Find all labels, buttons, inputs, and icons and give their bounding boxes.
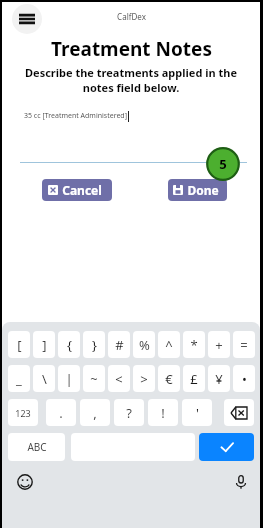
staticText: | xyxy=(65,370,73,388)
button[interactable]: \ xyxy=(33,365,55,392)
staticText: • xyxy=(242,370,247,388)
staticText: ' xyxy=(196,404,199,422)
staticText: < xyxy=(115,370,123,388)
button[interactable]: Menu xyxy=(12,4,42,34)
staticText: Treatment Notes xyxy=(51,36,212,62)
button[interactable]: % xyxy=(133,331,155,358)
staticText: 5 xyxy=(219,155,227,173)
staticText: } xyxy=(92,336,97,354)
staticText: Describe the treatments applied in the n… xyxy=(10,65,252,95)
staticText: # xyxy=(115,336,124,354)
button[interactable]: | xyxy=(58,365,80,392)
button[interactable]: { xyxy=(58,331,80,358)
button[interactable]: 35 cc [Treatment Administered] xyxy=(24,108,129,124)
button[interactable]: . xyxy=(46,399,76,426)
button[interactable]: ] xyxy=(33,331,55,358)
staticText: Done xyxy=(187,182,219,198)
staticText: ~ xyxy=(90,370,98,388)
button[interactable]: [ xyxy=(8,331,30,358)
button[interactable]: } xyxy=(83,331,105,358)
button[interactable]: Done xyxy=(168,179,227,201)
staticText: [ xyxy=(17,336,22,354)
button[interactable]: £ xyxy=(183,365,205,392)
staticText: € xyxy=(165,370,173,388)
button[interactable]: + xyxy=(208,331,230,358)
staticText: £ xyxy=(190,370,198,388)
button[interactable]: 123 xyxy=(8,399,38,426)
staticText: CalfDex xyxy=(117,11,146,22)
button[interactable]: ! xyxy=(148,399,178,426)
button[interactable]: Delete xyxy=(224,399,254,426)
button[interactable]: # xyxy=(108,331,130,358)
staticText: ABC xyxy=(27,440,47,454)
staticText: \ xyxy=(42,370,47,388)
staticText: 35 cc [Treatment Administered] xyxy=(24,111,127,121)
button[interactable]: ABC xyxy=(8,433,65,461)
staticText: Cancel xyxy=(62,182,102,198)
staticText: { xyxy=(67,336,72,354)
staticText: ¥ xyxy=(215,370,223,388)
staticText: ! xyxy=(161,404,165,422)
button[interactable]: > xyxy=(133,365,155,392)
button[interactable]: € xyxy=(158,365,180,392)
button[interactable]: ' xyxy=(182,399,212,426)
staticText: ? xyxy=(126,404,132,422)
button[interactable]: ~ xyxy=(83,365,105,392)
button[interactable]: Enter xyxy=(199,433,254,461)
staticText: = xyxy=(240,336,248,354)
staticText: > xyxy=(140,370,148,388)
button[interactable]: ? xyxy=(114,399,144,426)
staticText: . xyxy=(59,404,63,422)
button[interactable]: Cancel xyxy=(42,179,112,201)
button[interactable]: _ xyxy=(8,365,30,392)
button[interactable]: Voice input xyxy=(230,471,252,493)
staticText: % xyxy=(139,336,150,354)
button[interactable]: Emoji xyxy=(14,471,36,493)
button[interactable]: , xyxy=(80,399,110,426)
staticText: _ xyxy=(16,370,22,388)
button[interactable]: ¥ xyxy=(208,365,230,392)
button[interactable]: < xyxy=(108,365,130,392)
button[interactable]: * xyxy=(183,331,205,358)
staticText: , xyxy=(93,404,97,422)
staticText: ^ xyxy=(165,336,173,354)
staticText: + xyxy=(215,336,223,354)
button[interactable]: = xyxy=(233,331,255,358)
button[interactable]: ^ xyxy=(158,331,180,358)
button[interactable]: • xyxy=(233,365,255,392)
staticText: * xyxy=(190,336,198,354)
staticText: 123 xyxy=(15,407,31,419)
staticText: ] xyxy=(42,336,47,354)
